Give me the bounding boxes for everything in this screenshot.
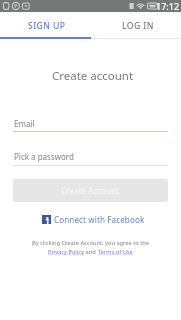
staticText: SIGN UP [28, 20, 66, 32]
staticText: Connect with Facebook [54, 214, 145, 225]
other: Facebook [42, 215, 51, 224]
staticText: LOG IN [122, 20, 154, 32]
button[interactable]: Terms of Use [98, 248, 133, 256]
staticText: Create account [2, 68, 181, 84]
staticText: Email [14, 118, 35, 129]
button[interactable]: Privacy Policy [48, 248, 84, 256]
staticText: and [84, 248, 98, 256]
button[interactable]: LOG IN [92, 12, 181, 39]
button[interactable]: Facebook [42, 213, 145, 225]
button[interactable]: SIGN UP [2, 12, 92, 39]
staticText: 17:12 [156, 0, 180, 12]
button[interactable]: Pick a password [13, 146, 168, 166]
staticText: By clicking Create Account, you agree to… [0, 239, 181, 247]
staticText: Create Account [61, 185, 120, 196]
staticText: Pick a password [14, 151, 74, 162]
button[interactable]: Email [13, 112, 168, 132]
